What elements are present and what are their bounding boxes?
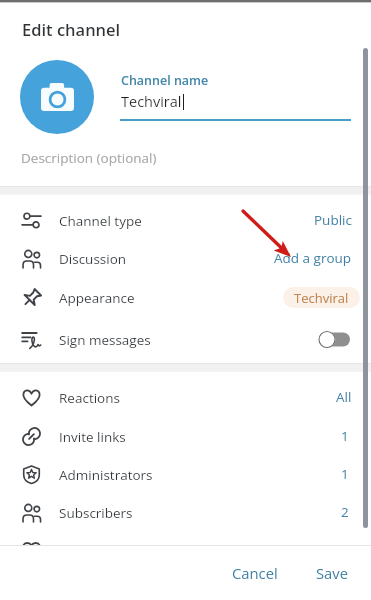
button[interactable]: Save: [306, 555, 358, 591]
staticText: Techviral: [121, 92, 182, 112]
staticText: Cancel: [232, 563, 278, 583]
button[interactable]: Techviral: [283, 287, 360, 308]
staticText: Subscribers: [59, 504, 133, 522]
staticText: Edit channel: [22, 18, 121, 40]
button[interactable]: Subscribers: [0, 493, 371, 531]
button[interactable]: Sign messages toggle: [318, 330, 350, 349]
button[interactable]: Cancel: [222, 555, 288, 591]
staticText: Channel name: [121, 72, 209, 89]
button[interactable]: Set channel photo: [20, 60, 94, 134]
button[interactable]: Channel type: [0, 201, 371, 239]
staticText: 1: [341, 465, 349, 483]
staticText: Save: [316, 563, 349, 583]
staticText: Add a group: [274, 249, 352, 267]
button[interactable]: Invite links: [0, 417, 371, 455]
staticText: Public: [314, 211, 352, 229]
staticText: Discussion: [59, 250, 127, 268]
staticText: 1: [341, 427, 349, 445]
button[interactable]: Discussion: [0, 239, 371, 277]
staticText: Reactions: [59, 389, 120, 407]
staticText: Techviral: [294, 289, 349, 307]
staticText: 2: [341, 503, 349, 521]
button[interactable]: [0, 532, 371, 545]
staticText: Invite links: [59, 428, 126, 446]
button[interactable]: Sign messages: [0, 320, 371, 358]
button[interactable]: Reactions: [0, 378, 371, 416]
staticText: Appearance: [59, 289, 135, 307]
staticText: All: [336, 388, 352, 406]
staticText: Administrators: [59, 466, 153, 484]
button[interactable]: Administrators: [0, 455, 371, 493]
button[interactable]: Appearance: [0, 278, 371, 316]
staticText: Sign messages: [59, 331, 151, 349]
staticText: Description (optional): [21, 149, 157, 167]
staticText: Channel type: [59, 212, 142, 230]
